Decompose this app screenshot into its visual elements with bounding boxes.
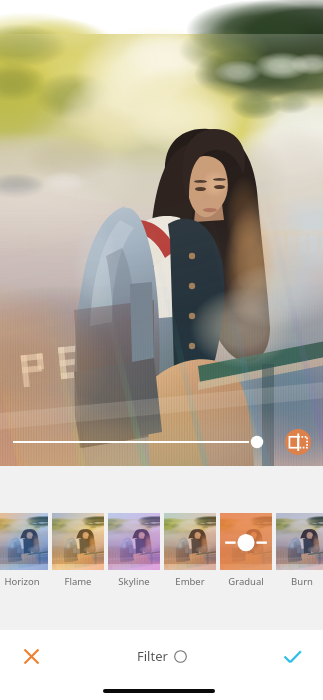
- button[interactable]: Apply: [261, 630, 323, 682]
- button[interactable]: Ember: [164, 513, 216, 593]
- staticText: Filter: [137, 647, 168, 665]
- staticText: Horizon: [0, 575, 48, 588]
- staticText: Flame: [52, 575, 104, 588]
- button[interactable]: Filter: [62, 630, 261, 682]
- staticText: Burn: [276, 575, 323, 588]
- button[interactable]: Filter strength: [0, 428, 323, 456]
- button[interactable]: Horizon: [0, 513, 48, 593]
- staticText: Gradual: [220, 575, 272, 588]
- button[interactable]: Compare original: [285, 429, 311, 455]
- staticText: Skyline: [108, 575, 160, 588]
- button[interactable]: Cancel: [0, 630, 62, 682]
- button[interactable]: Skyline: [108, 513, 160, 593]
- button[interactable]: Burn: [276, 513, 323, 593]
- button[interactable]: Gradual: [220, 513, 272, 593]
- staticText: Ember: [164, 575, 216, 588]
- button[interactable]: Flame: [52, 513, 104, 593]
